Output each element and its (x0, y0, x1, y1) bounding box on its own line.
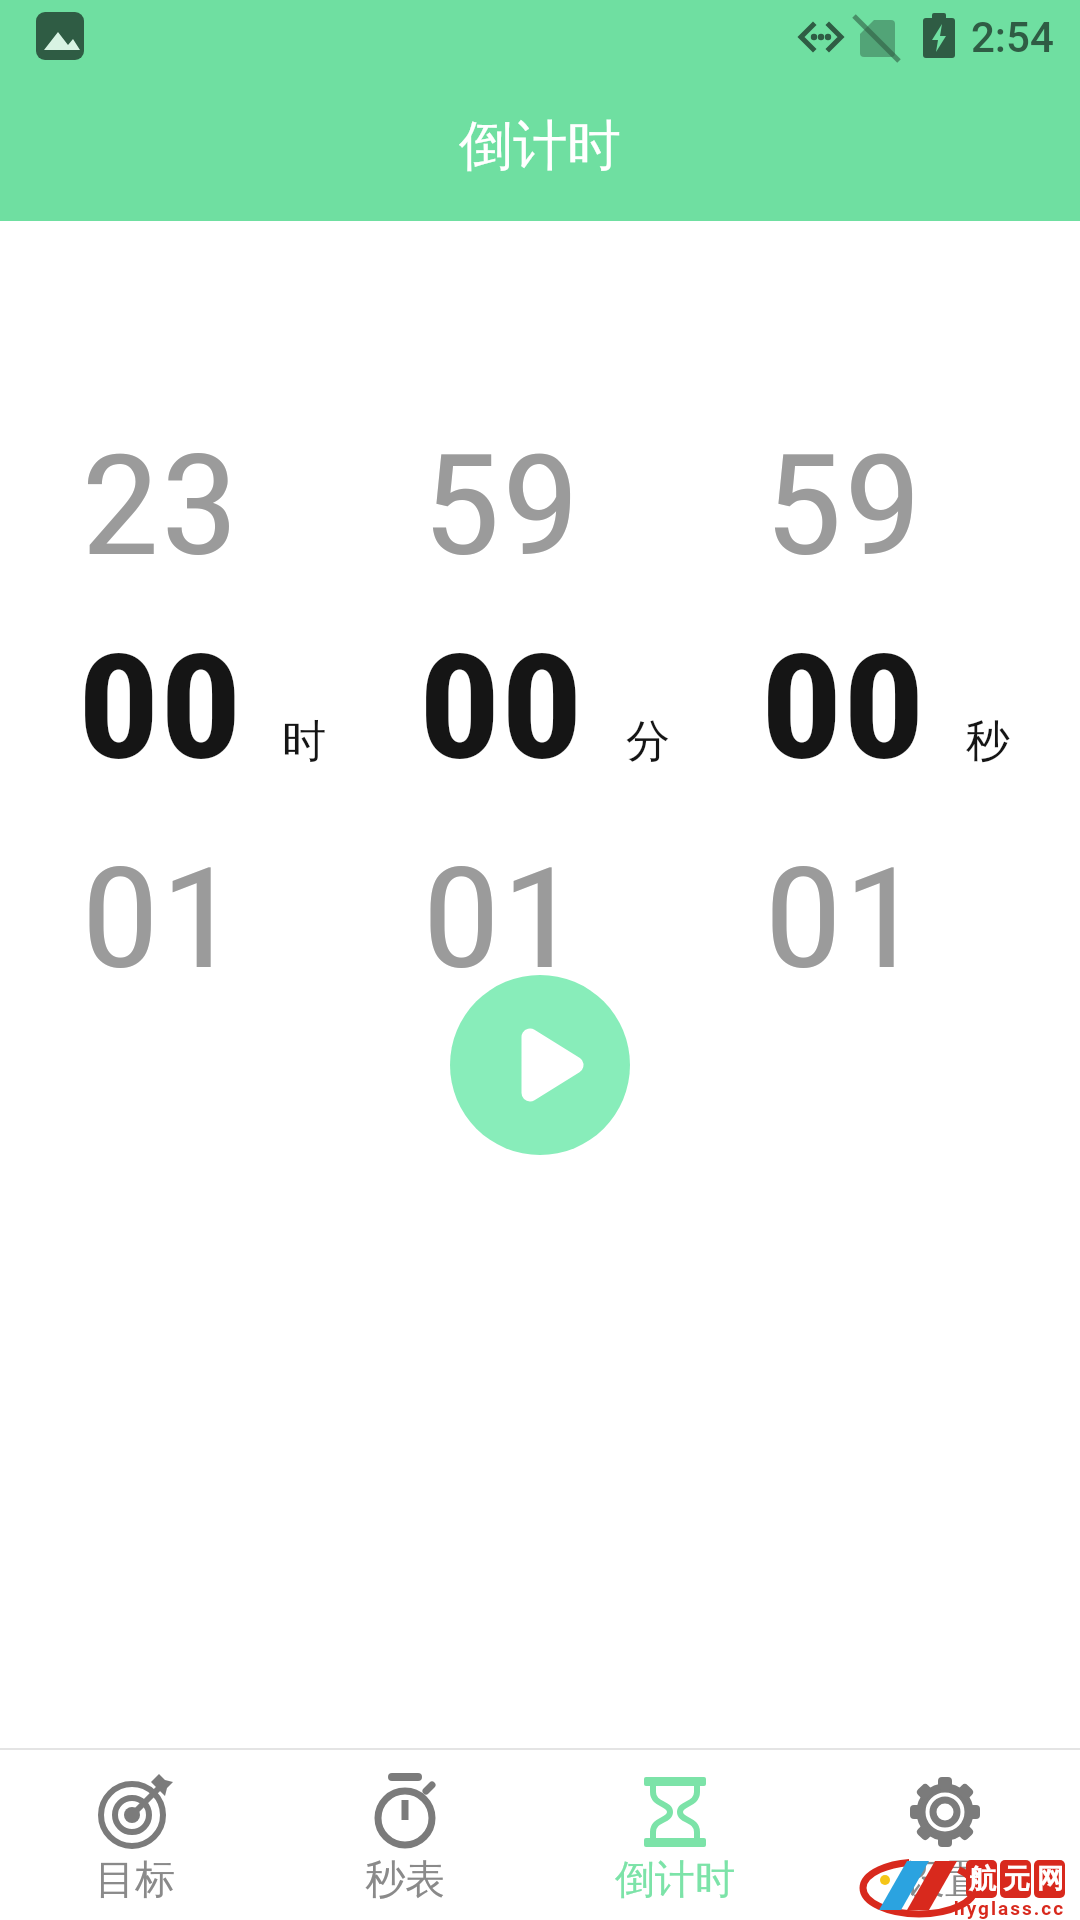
staticText: 23 (81, 424, 240, 588)
staticText: 倒计时 (615, 1854, 735, 1904)
staticText: 00 (77, 624, 242, 793)
staticText: 秒表 (365, 1854, 445, 1904)
staticText: 倒计时 (459, 112, 621, 180)
button[interactable] (20, 430, 300, 990)
staticText: 59 (764, 424, 923, 588)
button[interactable] (703, 430, 983, 990)
staticText: 秒 (966, 714, 1010, 769)
staticText: 00 (760, 624, 925, 793)
staticText: 59 (422, 424, 581, 588)
button[interactable] (361, 430, 641, 990)
staticText: 01 (81, 837, 240, 1001)
staticText: 01 (764, 837, 923, 1001)
staticText: 航 (969, 1862, 996, 1896)
staticText: 时 (282, 714, 326, 769)
staticText: hyglass.cc (954, 1897, 1066, 1919)
staticText: 网 (1037, 1862, 1064, 1896)
button[interactable]: 设置 (810, 1750, 1080, 1920)
button[interactable]: 倒计时 (540, 1750, 810, 1920)
staticText: 2:54 (971, 13, 1054, 62)
staticText: 目标 (95, 1854, 175, 1904)
button[interactable]: 秒表 (270, 1750, 540, 1920)
staticText: 元 (1003, 1862, 1030, 1896)
staticText: 设置 (905, 1854, 985, 1904)
staticText: 01 (422, 837, 581, 1001)
button[interactable] (450, 975, 630, 1155)
staticText: 分 (626, 714, 670, 769)
button[interactable]: 目标 (0, 1750, 270, 1920)
staticText: 00 (418, 624, 583, 793)
